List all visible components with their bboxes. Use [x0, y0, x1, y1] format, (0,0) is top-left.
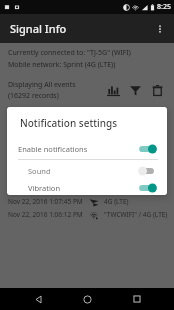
button[interactable]: Sound [7, 160, 167, 181]
staticText: Displaying All events [8, 80, 76, 90]
button[interactable]: Enable notifications [7, 138, 167, 159]
button[interactable]: Delete [146, 79, 168, 101]
button[interactable]: Nov 22, 2016 1:32:16 PM [0, 117, 174, 130]
button[interactable]: More options [149, 18, 171, 40]
button[interactable]: Back [26, 288, 50, 310]
staticText: "TWCWIFI" / 4G (LTE) [104, 210, 168, 219]
staticText: "TWCWIFI" / 4G (LTE) [104, 184, 168, 193]
staticText: Nov 22, 2016 1:13:32 PM [8, 158, 83, 167]
button[interactable]: Statistics [102, 79, 124, 101]
staticText: Nov 22, 2016 1:09:44 PM [8, 171, 83, 180]
staticText: "Walmartwifi" [104, 145, 147, 154]
button[interactable]: Recent apps [125, 288, 149, 310]
staticText: 8:25 [157, 2, 171, 12]
staticText: Nov 22, 2016 1:06:12 PM [8, 210, 83, 219]
staticText: Nov 22, 2016 1:13:33 PM [8, 145, 83, 154]
staticText: (16292 records) [8, 91, 59, 101]
button[interactable]: Nov 22, 2016 8:15:23 PM [0, 104, 174, 117]
staticText: "Walmartwifi" / 4G (LTE) [104, 132, 168, 141]
staticText: "Walmartwifi" / 4G (LTE) [104, 158, 168, 167]
button[interactable]: Nov 22, 2016 1:13:34 PM [0, 130, 174, 143]
staticText: Notification settings [20, 116, 118, 130]
staticText: Currently connected to: "TJ-5G" (WIFI) [8, 48, 131, 58]
button[interactable]: Nov 22, 2016 1:08:43 PM [0, 182, 174, 195]
button[interactable]: Nov 22, 2016 1:13:33 PM [0, 143, 174, 156]
staticText: Nov 22, 2016 1:32:16 PM [8, 119, 83, 128]
staticText: Mobile network: Sprint (4G (LTE)) [8, 60, 116, 70]
button[interactable]: Filter [124, 79, 146, 101]
staticText: 4G (LTE) [104, 197, 129, 206]
staticText: Nov 22, 2016 8:15:23 PM [8, 106, 83, 115]
staticText: Nov 22, 2016 1:08:43 PM [8, 184, 83, 193]
staticText: Enable notifications [18, 144, 138, 154]
button[interactable]: Vibration [7, 181, 167, 195]
button[interactable]: Nov 22, 2016 1:13:32 PM [0, 156, 174, 169]
staticText: Vibration [28, 183, 138, 193]
staticText: 4G (LTE) [104, 119, 129, 128]
button[interactable]: Nov 22, 2016 1:09:44 PM [0, 169, 174, 182]
staticText: Signal Info [10, 21, 67, 36]
staticText: Sound [28, 166, 138, 176]
staticText: "TJ-5G" / 4G (LTE) [104, 106, 156, 115]
button[interactable]: Nov 22, 2016 1:07:45 PM [0, 195, 174, 208]
button[interactable]: Home [75, 288, 99, 310]
button[interactable]: Nov 22, 2016 1:06:12 PM [0, 208, 174, 221]
staticText: Nov 22, 2016 1:07:45 PM [8, 197, 83, 206]
